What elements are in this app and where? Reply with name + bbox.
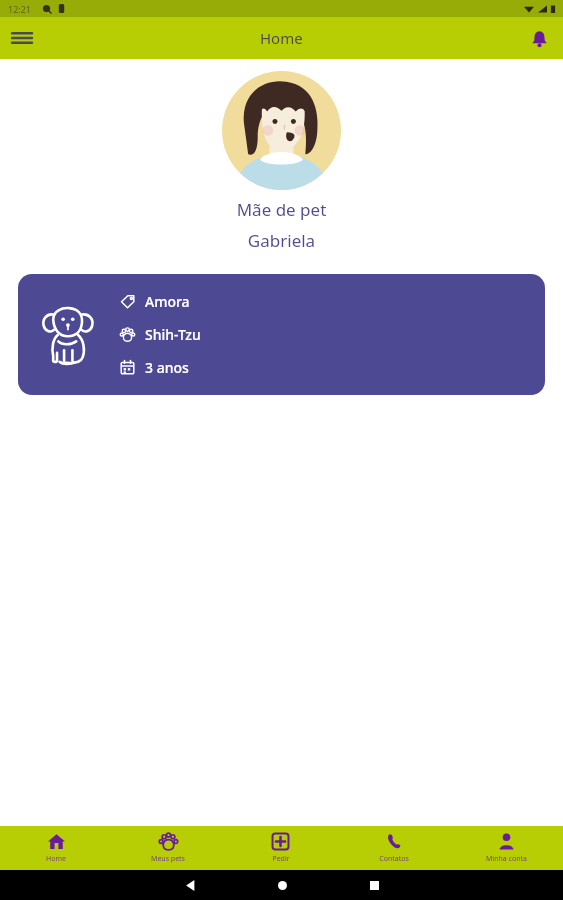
staticText: Meus pets [151,854,185,864]
button[interactable]: Recents [354,870,394,900]
staticText: 3 anos [145,358,189,377]
staticText: 12:21 [8,3,32,15]
staticText: Minha conta [486,854,527,864]
staticText: Amora [145,292,190,311]
staticText: Pedir [272,854,290,864]
button[interactable]: Minha conta [450,826,563,870]
staticText: Home [260,28,303,48]
button[interactable]: Notifications [523,22,555,54]
button[interactable]: Home [0,826,112,870]
staticText: Home [46,854,66,864]
staticText: Shih-Tzu [145,325,201,344]
button[interactable]: Meus pets [112,826,224,870]
button[interactable]: Contatos [337,826,450,870]
button[interactable]: Pedir [224,826,337,870]
staticText: Gabriela [0,229,563,252]
button[interactable]: Back [170,870,210,900]
button[interactable]: Home [262,870,302,900]
staticText: Mãe de pet [0,198,563,221]
button[interactable]: Menu [6,22,38,54]
button[interactable]: Amora [18,274,545,395]
staticText: Contatos [379,854,409,864]
